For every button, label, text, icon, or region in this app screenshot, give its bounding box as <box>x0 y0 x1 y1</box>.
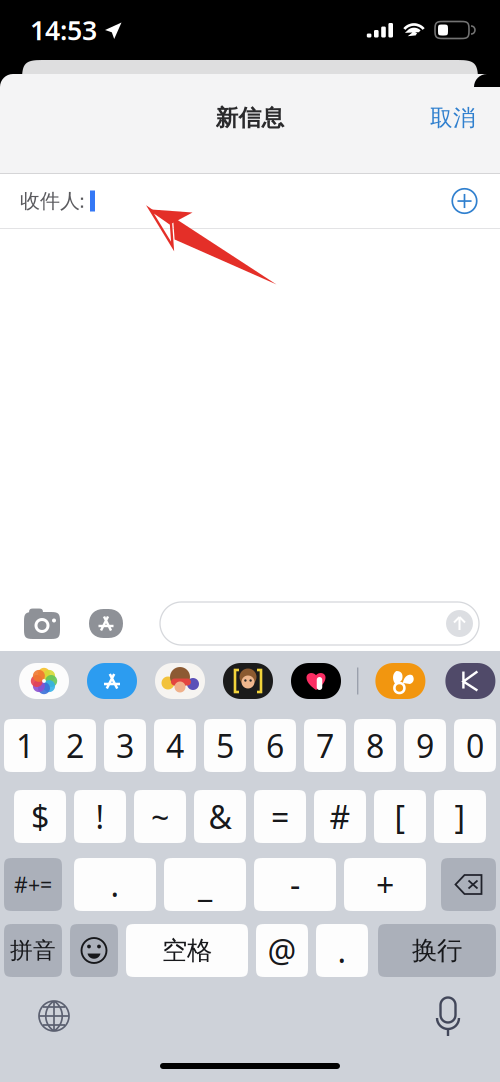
button[interactable]: [ <box>374 790 426 843</box>
button[interactable]: @ <box>256 924 308 977</box>
staticText: = <box>271 795 289 838</box>
staticText: ] <box>454 795 465 838</box>
staticText: 8 <box>366 724 384 767</box>
staticText: 5 <box>216 724 234 767</box>
staticText: 0 <box>466 724 484 767</box>
button[interactable]: Delete <box>441 858 496 911</box>
staticText: 7 <box>316 724 334 767</box>
button[interactable]: Add contact <box>452 188 477 213</box>
button[interactable]: 8 <box>354 719 396 772</box>
staticText: ~ <box>151 795 169 838</box>
staticText: & <box>208 795 231 838</box>
staticText: 换行 <box>412 935 462 966</box>
staticText: ： <box>72 189 92 213</box>
button[interactable]: Apps <box>87 607 125 639</box>
button[interactable]: Kuaishou <box>445 663 495 699</box>
button[interactable]: App Store <box>87 663 137 699</box>
staticText: @ <box>267 929 296 972</box>
button[interactable]: Switch keyboard <box>38 1000 70 1032</box>
button[interactable]: # <box>314 790 366 843</box>
button[interactable]: ] <box>434 790 486 843</box>
button[interactable]: #+= <box>4 858 62 911</box>
button[interactable]: . <box>316 924 368 977</box>
button[interactable]: 1 <box>4 719 46 772</box>
button[interactable]: 4 <box>154 719 196 772</box>
button[interactable]: - <box>254 858 336 911</box>
button[interactable]: 空格 <box>126 924 248 977</box>
button[interactable]: 3 <box>104 719 146 772</box>
staticText: 空格 <box>162 935 212 966</box>
staticText: 9 <box>416 724 434 767</box>
staticText: 3 <box>116 724 134 767</box>
staticText: 拼音 <box>10 937 56 964</box>
staticText: #+= <box>14 870 52 899</box>
button[interactable]: Photos <box>19 663 69 699</box>
button[interactable]: Emoji <box>70 924 118 977</box>
button[interactable]: + <box>344 858 426 911</box>
button[interactable]: 7 <box>304 719 346 772</box>
staticText: 1 <box>16 724 34 767</box>
button[interactable]: Memoji Stickers <box>155 663 205 699</box>
staticText: - <box>290 863 300 906</box>
staticText: # <box>329 795 350 838</box>
staticText: 收件人 <box>20 189 80 213</box>
staticText: ! <box>95 795 104 838</box>
staticText: + <box>376 863 394 906</box>
staticText: 2 <box>66 724 84 767</box>
button[interactable]: ! <box>74 790 126 843</box>
button[interactable]: 取消 <box>406 74 500 152</box>
button[interactable]: Camera <box>23 607 61 639</box>
staticText: 取消 <box>430 104 476 132</box>
button[interactable]: 5 <box>204 719 246 772</box>
button[interactable]: ~ <box>134 790 186 843</box>
staticText: [ <box>394 795 405 838</box>
button[interactable]: . <box>74 858 156 911</box>
staticText: 6 <box>266 724 284 767</box>
button[interactable]: _ <box>164 858 246 911</box>
staticText: 新信息 <box>215 104 284 132</box>
button[interactable]: Digital Touch <box>291 663 341 699</box>
staticText: $ <box>31 795 49 838</box>
button[interactable]: = <box>254 790 306 843</box>
button[interactable]: Memoji <box>223 663 273 699</box>
staticText: . <box>337 929 346 972</box>
button[interactable]: 换行 <box>378 924 496 977</box>
button[interactable]: Dictation <box>431 996 465 1036</box>
button[interactable]: & <box>194 790 246 843</box>
button[interactable]: 9 <box>404 719 446 772</box>
button[interactable]: $ <box>14 790 66 843</box>
staticText: 4 <box>166 724 184 767</box>
button[interactable]: 2 <box>54 719 96 772</box>
staticText: _ <box>198 863 212 906</box>
staticText: . <box>110 863 119 906</box>
staticText: 14:53 <box>30 12 97 48</box>
button[interactable]: UC Browser <box>375 663 425 699</box>
button[interactable]: 0 <box>454 719 496 772</box>
button[interactable]: 拼音 <box>4 924 62 977</box>
button[interactable]: 6 <box>254 719 296 772</box>
